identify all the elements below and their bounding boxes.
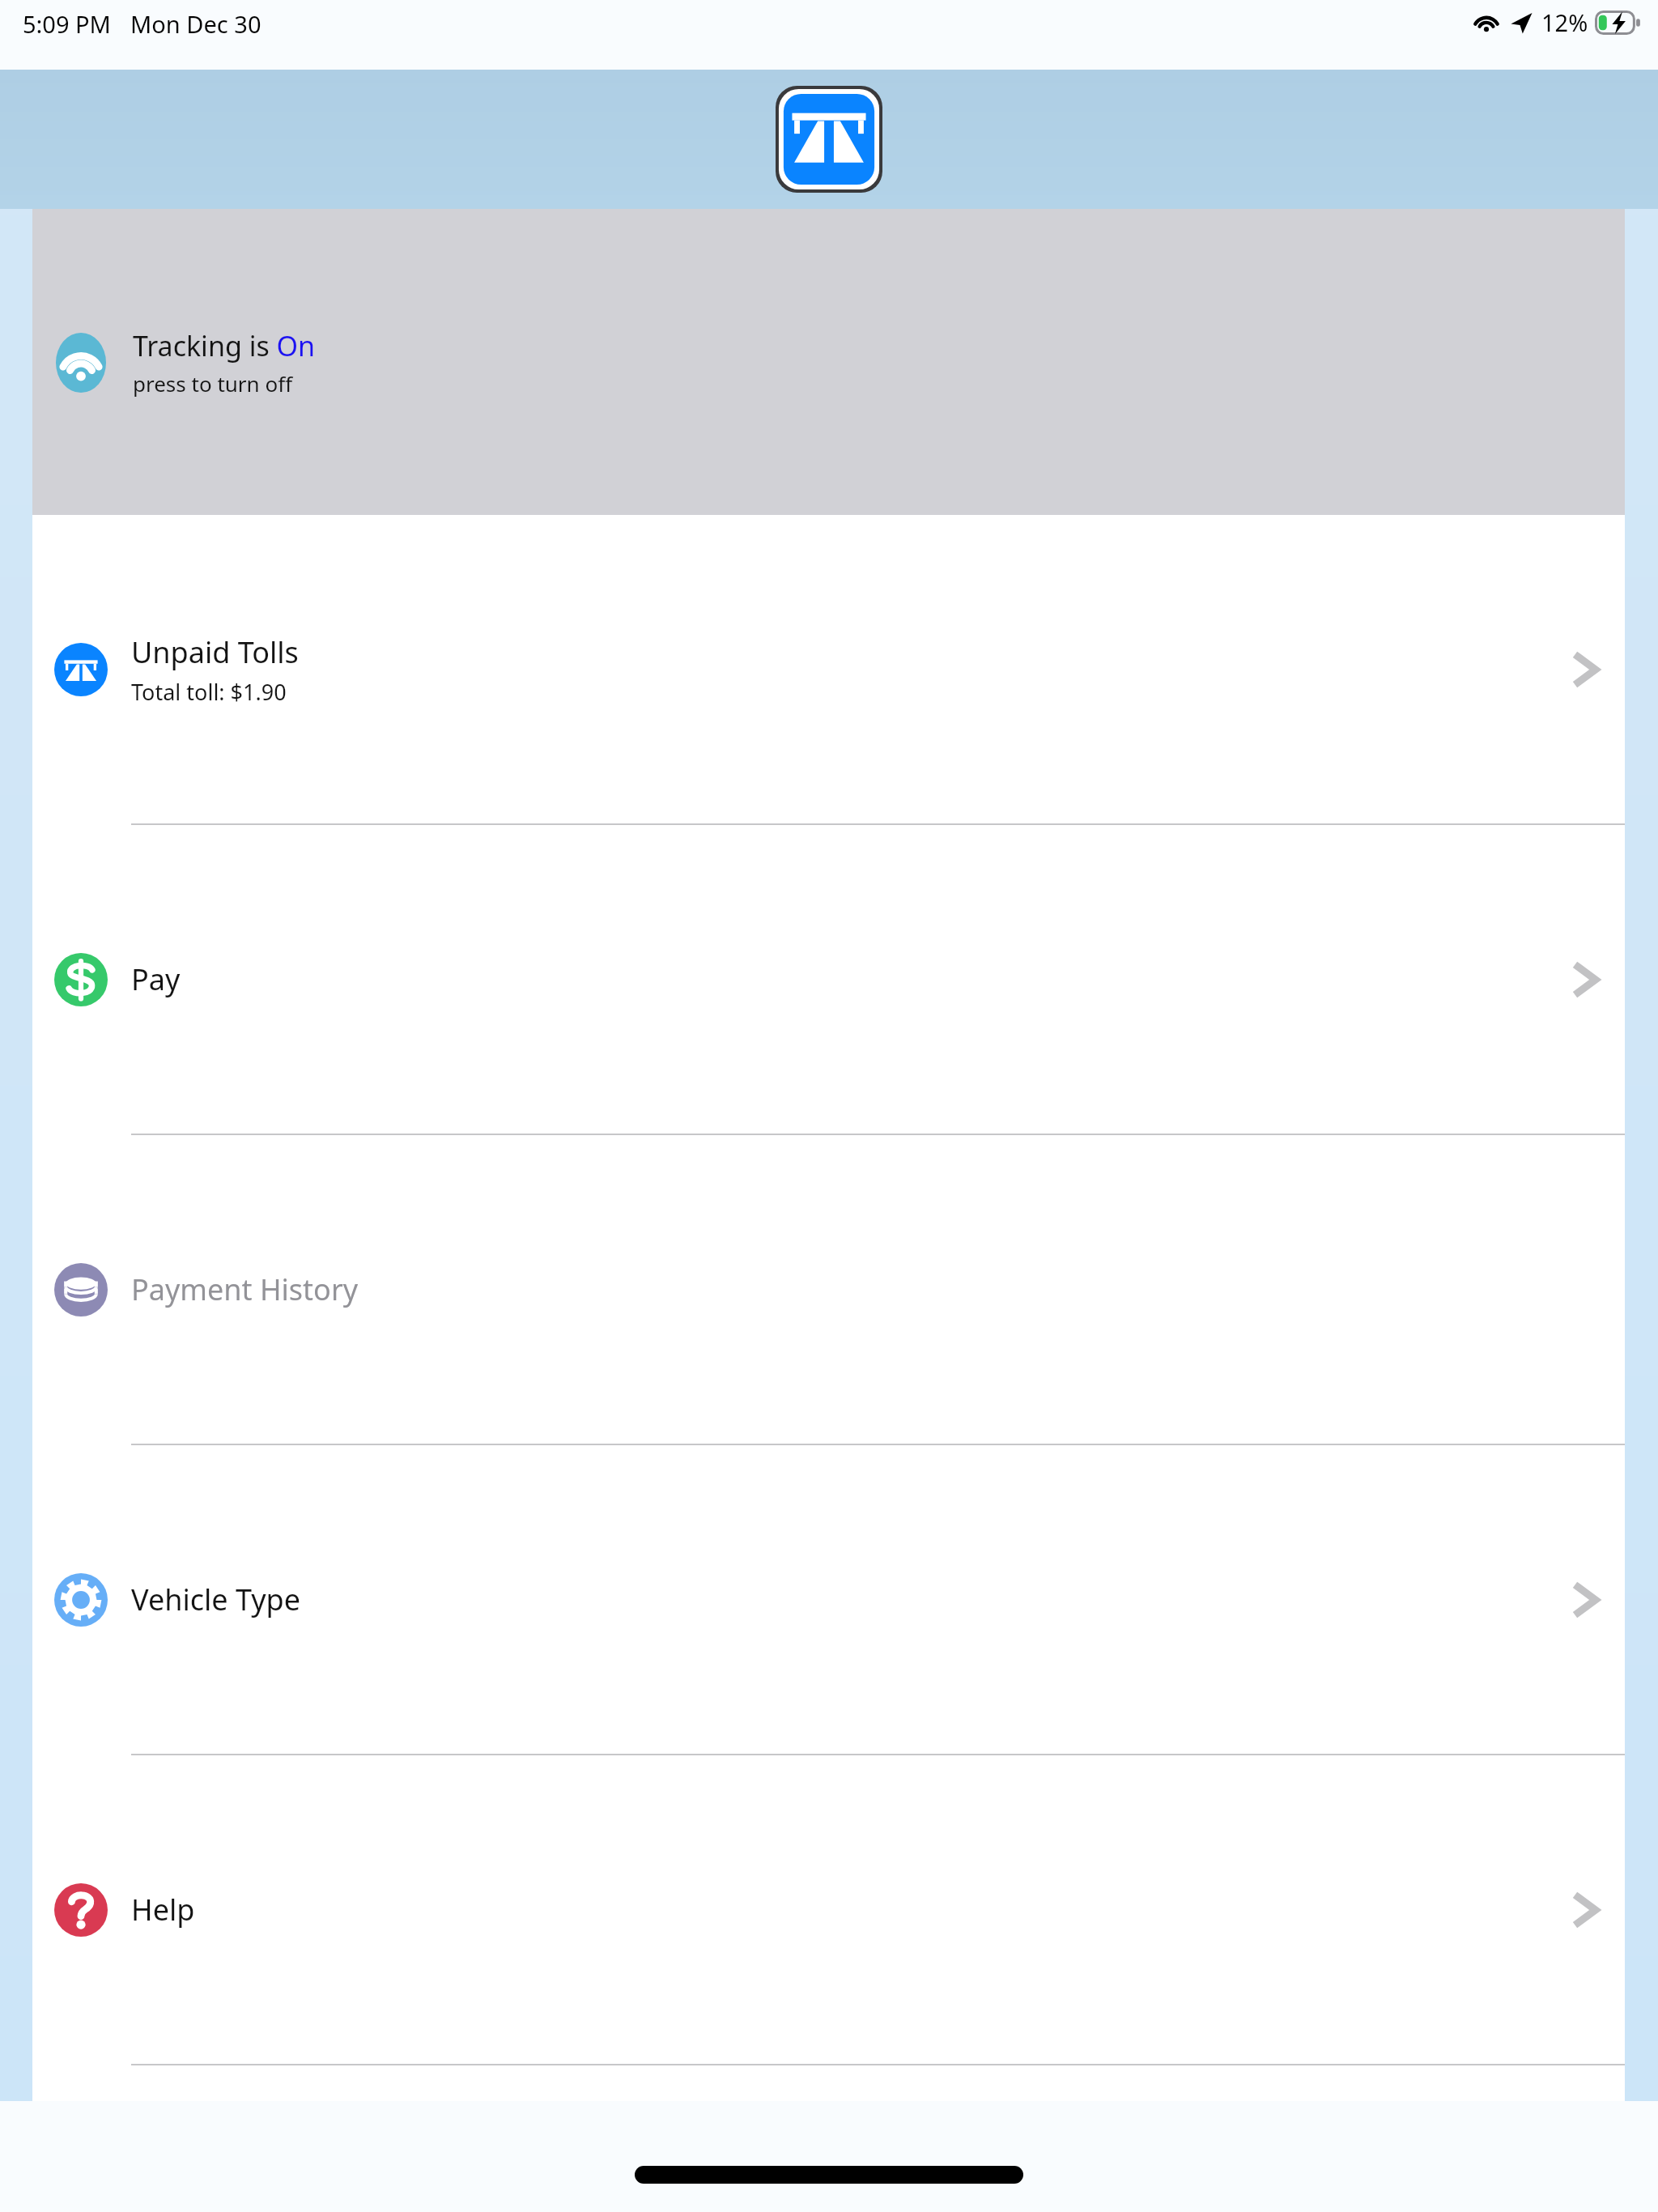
staticText: Unpaid Tolls bbox=[131, 632, 299, 672]
other: Toll app logo bbox=[776, 86, 882, 193]
button[interactable]: Pay bbox=[32, 825, 1625, 1135]
staticText: 12% bbox=[1541, 6, 1588, 38]
button[interactable]: Payment History bbox=[32, 1135, 1625, 1445]
button[interactable]: Unpaid Tolls bbox=[32, 515, 1625, 825]
staticText: Pay bbox=[131, 959, 181, 999]
button[interactable]: Vehicle Type bbox=[32, 1445, 1625, 1755]
staticText: Payment History bbox=[131, 1270, 359, 1309]
staticText: press to turn off bbox=[133, 369, 293, 398]
staticText: Vehicle Type bbox=[131, 1580, 301, 1619]
button[interactable]: Tracking is On bbox=[32, 209, 1625, 515]
staticText: Tracking is On bbox=[133, 327, 316, 364]
staticText: 5:09 PM bbox=[23, 8, 111, 40]
button[interactable]: Help bbox=[32, 1755, 1625, 2065]
staticText: Help bbox=[131, 1890, 195, 1929]
staticText: Total toll: $1.90 bbox=[131, 677, 287, 707]
staticText: Mon Dec 30 bbox=[130, 8, 261, 40]
